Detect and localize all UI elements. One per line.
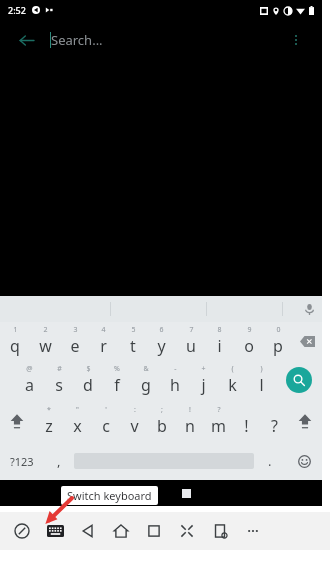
staticText: % [114, 364, 120, 374]
button[interactable]: More [241, 519, 265, 543]
staticText: ! [189, 405, 191, 415]
staticText: 3 [73, 325, 78, 335]
button[interactable]: ) [247, 360, 276, 400]
staticText: l [259, 374, 264, 396]
button[interactable]: Recents [142, 519, 166, 543]
button[interactable]: 0 [263, 322, 292, 360]
staticText: s [55, 374, 63, 396]
staticText: m [211, 415, 226, 437]
button[interactable]: - [160, 360, 189, 400]
button[interactable]: ' [92, 400, 120, 442]
staticText: d [83, 374, 93, 396]
button[interactable]: $ [73, 360, 102, 400]
button[interactable]: ? [260, 400, 288, 442]
button[interactable]: 1 [0, 322, 30, 360]
button[interactable]: Back [76, 519, 100, 543]
staticText: : [134, 405, 136, 415]
button[interactable]: @ [14, 360, 44, 400]
staticText: * [47, 405, 51, 415]
staticText: , [57, 452, 61, 470]
staticText: 9 [247, 325, 252, 335]
staticText: i [217, 335, 222, 357]
button[interactable]: ; [148, 400, 176, 442]
staticText: # [57, 364, 62, 374]
staticText: & [143, 364, 149, 374]
button[interactable]: Fullscreen [175, 519, 199, 543]
button[interactable]: Clipboard [208, 519, 232, 543]
button[interactable]: Search [276, 360, 322, 400]
button[interactable]: 9 [234, 322, 263, 360]
staticText: x [73, 415, 82, 437]
staticText: f [114, 374, 120, 396]
staticText: g [141, 374, 151, 396]
button[interactable]: : [120, 400, 148, 442]
staticText: - [174, 364, 177, 374]
staticText: ? [271, 415, 278, 437]
staticText: 7 [189, 325, 194, 335]
button[interactable]: Hide keyboard [78, 480, 104, 506]
staticText: 5 [131, 325, 136, 335]
staticText: " [76, 405, 79, 415]
button[interactable]: 8 [205, 322, 234, 360]
staticText: ?123 [10, 454, 34, 469]
button[interactable]: , [44, 442, 74, 480]
staticText: q [10, 335, 20, 357]
staticText: h [170, 374, 180, 396]
button[interactable]: Back [12, 26, 40, 54]
button[interactable]: ! [232, 400, 260, 442]
staticText: z [45, 415, 53, 437]
button[interactable]: * [34, 400, 63, 442]
button[interactable]: Backspace [292, 322, 322, 360]
staticText: Switch keyboard [67, 488, 152, 503]
button[interactable]: 5 [118, 322, 147, 360]
button[interactable]: + [189, 360, 218, 400]
staticText: j [201, 374, 206, 396]
button[interactable]: & [131, 360, 160, 400]
button[interactable]: ?123 [0, 442, 44, 480]
staticText: w [39, 335, 52, 357]
button[interactable]: Shift [288, 400, 322, 442]
staticText: 0 [276, 325, 281, 335]
button[interactable]: 3 [60, 322, 89, 360]
staticText: ; [161, 405, 163, 415]
button[interactable]: 7 [176, 322, 205, 360]
staticText: o [244, 335, 254, 357]
button[interactable]: 4 [89, 322, 118, 360]
staticText: 1 [13, 325, 18, 335]
staticText: @ [26, 364, 33, 374]
button[interactable]: Recents [173, 480, 199, 506]
button[interactable]: ! [176, 400, 204, 442]
button[interactable]: Emoji [286, 442, 322, 480]
button[interactable]: Shift [0, 400, 34, 442]
staticText: b [157, 415, 167, 437]
button[interactable]: Rotate [10, 519, 34, 543]
staticText: ? [217, 405, 221, 415]
staticText: v [130, 415, 139, 437]
staticText: ) [260, 364, 263, 374]
button[interactable]: 2 [30, 322, 60, 360]
staticText: t [130, 335, 136, 357]
staticText: e [70, 335, 80, 357]
button[interactable]: # [44, 360, 73, 400]
staticText: p [273, 335, 283, 357]
staticText: u [186, 335, 196, 357]
staticText: 2:52 [8, 4, 26, 16]
button[interactable]: More options [282, 26, 310, 54]
staticText: ( [231, 364, 234, 374]
staticText: y [157, 335, 166, 357]
staticText: Search... [51, 31, 103, 49]
button[interactable]: 6 [147, 322, 176, 360]
button[interactable]: " [63, 400, 92, 442]
button[interactable]: Switch keyboard [43, 519, 67, 543]
button[interactable]: % [102, 360, 131, 400]
button[interactable]: Home [109, 519, 133, 543]
staticText: 4 [101, 325, 106, 335]
button[interactable]: ? [204, 400, 232, 442]
button[interactable]: Voice input [296, 296, 322, 322]
button[interactable]: . [254, 442, 286, 480]
button[interactable]: ( [218, 360, 247, 400]
